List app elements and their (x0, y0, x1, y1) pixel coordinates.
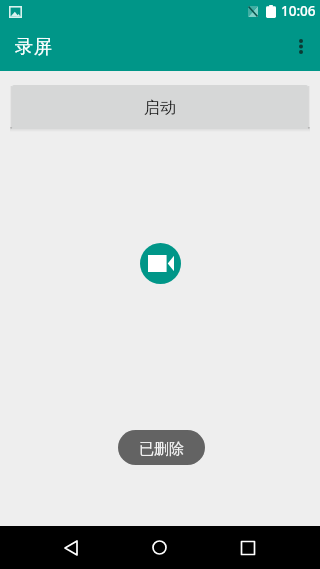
button[interactable]: More options (284, 24, 320, 71)
button[interactable]: Record video (140, 243, 181, 284)
button[interactable]: Recent apps (224, 526, 272, 569)
button[interactable]: 启动 (12, 85, 308, 129)
staticText: 启动 (144, 98, 176, 118)
staticText: 录屏 (15, 35, 52, 58)
button[interactable]: Home (135, 526, 183, 569)
staticText: 已删除 (139, 440, 184, 459)
staticText: 10:06 (281, 2, 316, 20)
button[interactable]: Back (47, 526, 95, 569)
